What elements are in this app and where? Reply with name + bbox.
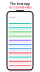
staticText: for Countdowns	[8, 6, 31, 9]
staticText: The best app	[10, 2, 30, 6]
